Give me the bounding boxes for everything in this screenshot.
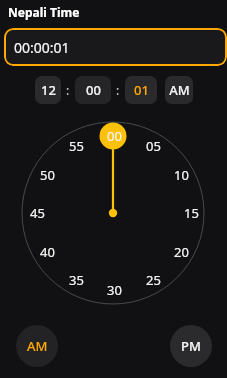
staticText: 50 — [40, 166, 55, 184]
staticText: 30 — [107, 281, 122, 299]
button[interactable]: 00 — [75, 76, 111, 104]
staticText: PM — [181, 337, 201, 355]
staticText: : — [66, 82, 70, 98]
staticText: 25 — [146, 271, 161, 289]
button[interactable]: 00:00:01 — [4, 28, 227, 66]
staticText: 45 — [30, 204, 45, 222]
staticText: 10 — [174, 166, 189, 184]
staticText: Nepali Time — [8, 4, 80, 20]
staticText: 01 — [134, 81, 149, 99]
staticText: 15 — [184, 204, 199, 222]
staticText: 40 — [40, 243, 55, 261]
button[interactable]: 12 — [35, 76, 61, 104]
staticText: 55 — [69, 137, 84, 155]
staticText: AM — [27, 337, 48, 355]
button[interactable]: 01 — [125, 76, 157, 104]
staticText: 00 — [86, 81, 101, 99]
staticText: 05 — [146, 137, 161, 155]
staticText: 20 — [174, 243, 189, 261]
staticText: 00:00:01 — [14, 38, 70, 57]
button[interactable]: PM — [170, 325, 212, 367]
staticText: AM — [169, 81, 190, 99]
staticText: 00 — [107, 127, 122, 145]
button[interactable]: AM — [165, 76, 193, 104]
staticText: 12 — [41, 81, 56, 99]
button[interactable] — [0, 120, 227, 306]
staticText: : — [116, 82, 120, 98]
button[interactable]: AM — [16, 325, 58, 367]
staticText: 35 — [69, 271, 84, 289]
